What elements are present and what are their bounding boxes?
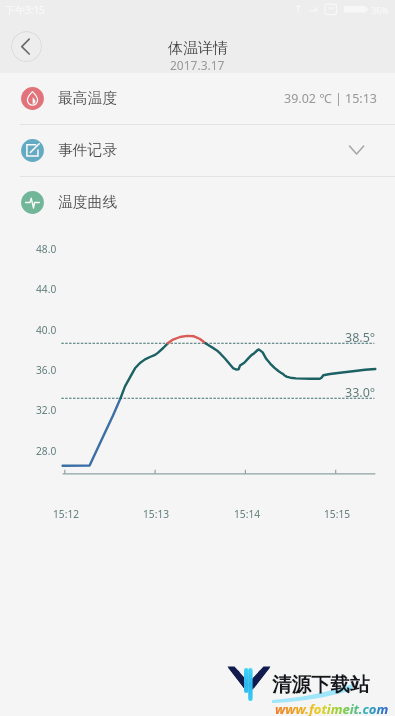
button[interactable]: Back xyxy=(11,31,42,62)
staticText: 38.5° xyxy=(345,329,376,346)
staticText: 2017.3.17 xyxy=(170,57,225,73)
staticText: 44.0 xyxy=(36,282,57,296)
staticText: 28.0 xyxy=(36,444,57,458)
staticText: 最高温度 xyxy=(58,89,118,108)
button[interactable]: 事件记录 xyxy=(0,125,395,176)
staticText: 15:12 xyxy=(53,507,80,521)
staticText: 温度曲线 xyxy=(58,193,118,212)
button[interactable]: 最高温度 xyxy=(0,73,395,124)
staticText: 15:15 xyxy=(324,507,351,521)
staticText: 48.0 xyxy=(36,242,57,256)
staticText: 40.0 xyxy=(36,323,57,337)
staticText: 36.0 xyxy=(36,363,57,377)
staticText: 15:13 xyxy=(143,507,170,521)
staticText: 事件记录 xyxy=(58,141,118,160)
staticText: 39.02 ℃ | 15:13 xyxy=(284,90,377,107)
staticText: 清源下载站 xyxy=(272,672,370,697)
staticText: www.fotimeit.com xyxy=(275,700,389,716)
staticText: 33.0° xyxy=(345,384,376,401)
staticText: 下午3:15 xyxy=(5,3,45,17)
staticText: 32.0 xyxy=(36,403,57,417)
staticText: 15:14 xyxy=(234,507,261,521)
button[interactable]: 温度曲线 xyxy=(0,177,395,228)
staticText: 36% xyxy=(371,4,389,16)
staticText: 体温详情 xyxy=(168,39,228,58)
